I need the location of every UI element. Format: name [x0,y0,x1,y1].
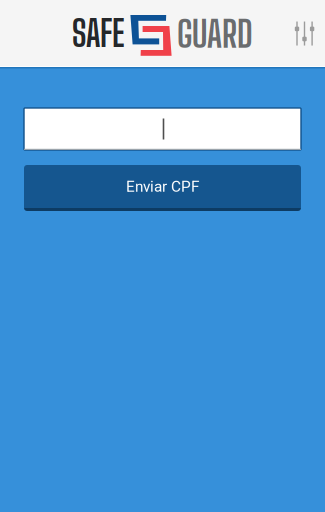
button[interactable]: Enviar CPF [24,165,301,211]
button[interactable]: Settings [284,5,325,61]
staticText: SAFE [72,12,125,55]
staticText: GUARD [177,12,253,55]
staticText: Enviar CPF [126,177,199,195]
button[interactable]: CPF [24,108,301,150]
